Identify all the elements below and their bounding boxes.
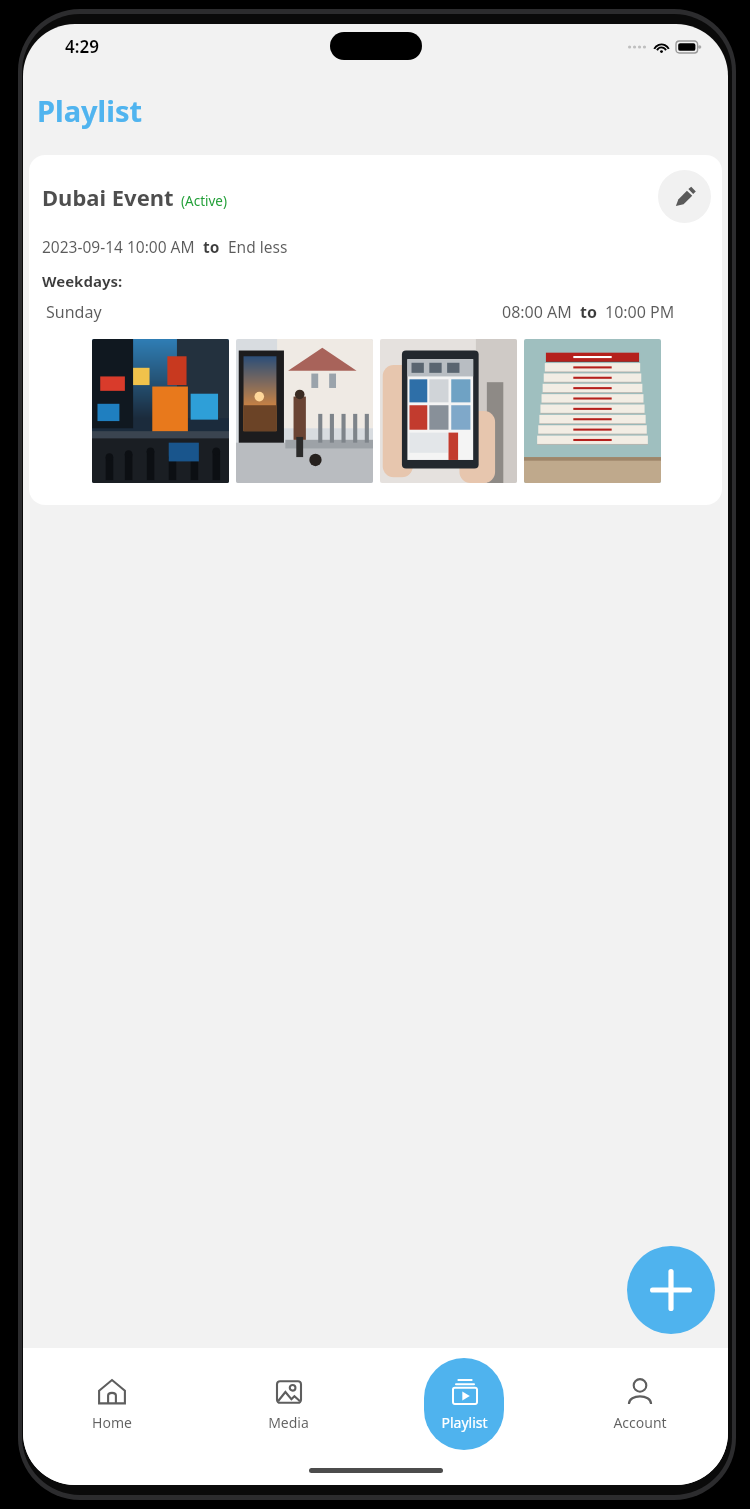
staticText: Playlist bbox=[441, 1413, 488, 1432]
staticText: 4:29 bbox=[65, 35, 99, 58]
staticText: to bbox=[580, 301, 597, 323]
staticText: (Active) bbox=[181, 192, 228, 210]
button[interactable]: Dubai Event bbox=[29, 155, 722, 505]
staticText: End less bbox=[228, 236, 288, 257]
button[interactable]: Edit playlist bbox=[658, 170, 711, 223]
staticText: Weekdays: bbox=[42, 271, 123, 291]
staticText: 08:00 AM bbox=[502, 301, 572, 323]
staticText: Home bbox=[92, 1413, 132, 1432]
staticText: to bbox=[203, 236, 220, 257]
staticText: Sunday bbox=[46, 301, 102, 323]
staticText: Media bbox=[268, 1413, 309, 1432]
button[interactable]: Add playlist bbox=[627, 1246, 715, 1334]
staticText: 2023-09-14 10:00 AM bbox=[42, 236, 195, 257]
button[interactable]: Home bbox=[23, 1348, 200, 1460]
button[interactable]: Media bbox=[200, 1348, 376, 1460]
staticText: Dubai Event bbox=[42, 182, 174, 212]
staticText: 10:00 PM bbox=[605, 301, 675, 323]
button[interactable]: Account bbox=[552, 1348, 728, 1460]
staticText: Playlist bbox=[37, 91, 143, 130]
staticText: Account bbox=[613, 1413, 667, 1432]
button[interactable]: Playlist bbox=[376, 1348, 552, 1460]
